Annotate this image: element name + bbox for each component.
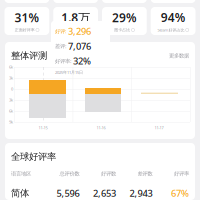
staticText: 1.8万 bbox=[61, 10, 90, 25]
staticText: 5,596 bbox=[56, 187, 79, 199]
staticText: 94% bbox=[161, 9, 186, 25]
staticText: 67% bbox=[171, 187, 189, 199]
button[interactable]: 29% bbox=[102, 7, 147, 35]
button[interactable]: 31% bbox=[4, 7, 49, 35]
staticText: 3,296 bbox=[68, 25, 91, 37]
staticText: 11-16 bbox=[96, 125, 105, 130]
staticText: 2,653 bbox=[93, 187, 116, 199]
staticText: 0 bbox=[11, 86, 13, 92]
staticText: 11-17 bbox=[154, 125, 163, 130]
button[interactable]: 更多数据 bbox=[169, 52, 189, 59]
staticText: 正面好评率 bbox=[15, 27, 35, 32]
staticText: Steam好评占比 bbox=[157, 27, 184, 33]
staticText: 29% bbox=[112, 10, 137, 25]
staticText: 整体评测 bbox=[11, 50, 47, 61]
staticText: 3k bbox=[9, 97, 13, 103]
staticText: 9k bbox=[9, 119, 13, 125]
staticText: 31% bbox=[14, 10, 39, 25]
staticText: 差评: bbox=[55, 42, 66, 50]
staticText: 好评数 bbox=[101, 170, 116, 177]
staticText: 32% bbox=[73, 55, 91, 67]
staticText: 语言地区 bbox=[11, 170, 31, 177]
staticText: 差评数 bbox=[137, 170, 152, 177]
staticText: 7,076 bbox=[68, 40, 91, 52]
staticText: 总评价数 bbox=[59, 170, 79, 177]
button[interactable]: 1.8万 bbox=[53, 7, 98, 35]
staticText: 11-15 bbox=[38, 125, 47, 130]
staticText: 6k bbox=[9, 108, 13, 114]
staticText: 图卡占比 bbox=[114, 27, 130, 32]
staticText: 简体 bbox=[11, 187, 29, 199]
staticText: 好评率: bbox=[55, 57, 71, 64]
staticText: 2025年11月15日 bbox=[55, 70, 83, 75]
button[interactable]: 94% bbox=[151, 7, 196, 35]
staticText: 2,943 bbox=[129, 187, 152, 199]
staticText: 好评率 bbox=[174, 170, 189, 177]
staticText: 全球好评率 bbox=[11, 151, 56, 162]
staticText: 3k bbox=[9, 75, 13, 81]
staticText: 总评价数 bbox=[65, 27, 81, 32]
staticText: 好评: bbox=[55, 28, 66, 35]
staticText: 更多数据 bbox=[169, 52, 189, 59]
staticText: 6k bbox=[9, 64, 13, 70]
